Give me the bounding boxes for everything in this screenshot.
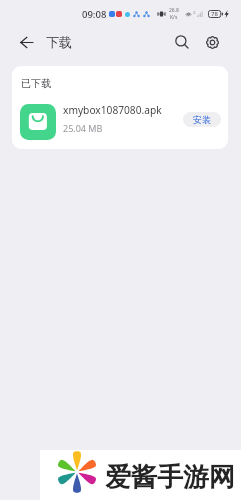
staticText: 已下载 (21, 77, 51, 90)
button[interactable] (12, 95, 228, 149)
staticText: K/s (170, 14, 178, 21)
staticText: 78 (211, 10, 218, 18)
staticText: 26.8 (169, 7, 179, 14)
button[interactable]: Search (169, 29, 195, 55)
staticText: 25.04 MB (63, 122, 103, 134)
staticText: 安装 (193, 114, 211, 125)
button[interactable]: Settings (199, 29, 225, 55)
staticText: 下载 (46, 34, 72, 50)
staticText: x (193, 9, 196, 16)
button[interactable]: 安装 (183, 112, 221, 127)
staticText: 爱酱手游网 (105, 461, 235, 494)
staticText: xmybox1087080.apk (63, 103, 162, 117)
staticText: 09:08 (82, 8, 107, 21)
button[interactable]: Back (14, 30, 38, 54)
